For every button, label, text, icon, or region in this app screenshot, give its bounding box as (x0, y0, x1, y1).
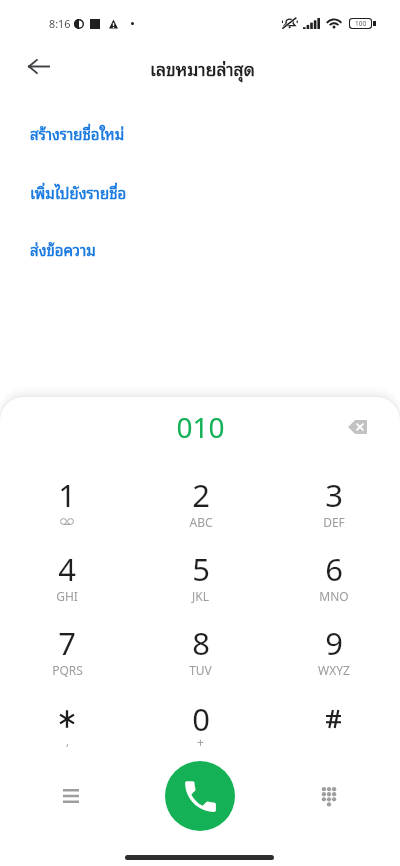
staticText: 2 (192, 474, 210, 516)
button[interactable]: 9 (267, 622, 400, 694)
staticText: MNO (319, 588, 349, 604)
staticText: DEF (323, 514, 345, 530)
button[interactable]: 1 (0, 474, 134, 546)
staticText: เลขหมายล่าสุด (150, 54, 255, 82)
button[interactable]: 6 (267, 548, 400, 620)
staticText: ABC (189, 514, 213, 530)
button[interactable]: , (0, 698, 134, 770)
button[interactable] (267, 698, 400, 770)
button[interactable]: Back (17, 45, 60, 88)
button[interactable]: ส่งข้อความ (0, 225, 400, 273)
button[interactable]: สร้างรายชื่อใหม่ (0, 109, 400, 157)
staticText: 0 (192, 698, 210, 740)
staticText: TUV (189, 662, 212, 678)
staticText: 9 (325, 622, 343, 664)
button[interactable]: Dialpad (308, 775, 349, 816)
staticText: 8 (192, 622, 210, 664)
staticText: 3 (325, 474, 343, 516)
staticText: 4 (58, 548, 76, 590)
staticText: JKL (192, 588, 209, 604)
staticText: สร้างรายชื่อใหม่ (30, 121, 125, 145)
button[interactable]: Backspace (337, 407, 377, 447)
button[interactable]: 2 (134, 474, 267, 546)
staticText: PQRS (52, 662, 83, 678)
button[interactable]: 4 (0, 548, 134, 620)
staticText: 7 (58, 622, 76, 664)
staticText: เพิ่มไปยังรายชื่อ (30, 180, 127, 204)
button[interactable]: 8 (134, 622, 267, 694)
staticText: + (197, 734, 204, 750)
staticText: 100 (355, 19, 367, 28)
staticText: 8:16 (49, 16, 71, 31)
staticText: ส่งข้อความ (30, 237, 96, 261)
staticText: 5 (192, 548, 210, 590)
staticText: 6 (325, 548, 343, 590)
button[interactable]: 3 (267, 474, 400, 546)
button[interactable]: เพิ่มไปยังรายชื่อ (0, 168, 400, 216)
staticText: WXYZ (318, 662, 350, 678)
button[interactable]: 7 (0, 622, 134, 694)
button[interactable]: Call (165, 761, 235, 831)
button[interactable]: Menu (50, 775, 91, 816)
staticText: 1 (58, 474, 76, 516)
staticText: , (66, 734, 69, 749)
button[interactable]: 0 (134, 698, 267, 770)
staticText: 010 (176, 408, 225, 446)
staticText: GHI (56, 588, 78, 604)
button[interactable]: 5 (134, 548, 267, 620)
